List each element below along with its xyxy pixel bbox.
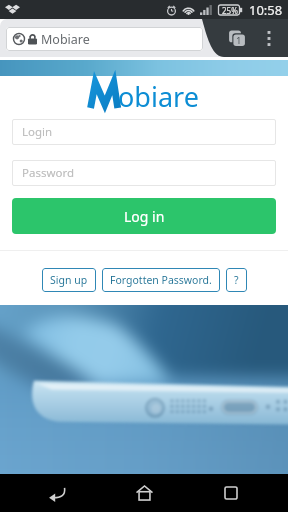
staticText: Login [22, 124, 53, 140]
button[interactable]: ? [226, 268, 247, 292]
button[interactable]: Password [12, 160, 276, 186]
staticText: Log in [124, 207, 165, 226]
staticText: Forgotten Password. [110, 273, 212, 287]
button[interactable]: Recents [201, 474, 261, 512]
staticText: 25% [222, 5, 238, 16]
button[interactable]: Mobiare [6, 27, 203, 51]
staticText: Mobiare [41, 31, 90, 48]
button[interactable]: Login [12, 119, 276, 145]
button[interactable]: Sign up [42, 268, 96, 292]
button[interactable]: Back [27, 474, 87, 512]
staticText: Password [22, 165, 75, 181]
button[interactable]: Log in [12, 198, 276, 234]
staticText: 1 [236, 34, 242, 47]
button[interactable]: Forgotten Password. [102, 268, 220, 292]
button[interactable]: Home [114, 474, 174, 512]
button[interactable]: More options [253, 20, 285, 56]
staticText: obiare [118, 78, 199, 115]
staticText: 10:58 [249, 1, 283, 19]
staticText: Sign up [50, 273, 88, 287]
button[interactable]: Tabs [221, 20, 253, 56]
staticText: ? [234, 273, 239, 287]
